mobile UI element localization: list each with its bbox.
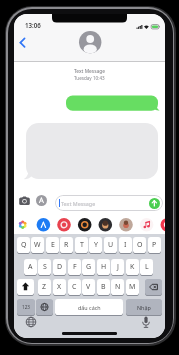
staticText: C (72, 282, 77, 292)
staticText: Y (94, 240, 98, 250)
button[interactable]: 123 (17, 299, 35, 315)
staticText: H (101, 262, 107, 272)
button[interactable]: F (68, 259, 81, 275)
button[interactable]: K (126, 259, 139, 275)
button[interactable] (139, 315, 153, 329)
button[interactable]: T (75, 237, 88, 253)
button[interactable]: Z (38, 279, 51, 295)
button[interactable] (145, 279, 162, 295)
staticText: P (152, 240, 157, 250)
staticText: 13:06 (25, 21, 41, 29)
staticText: D (57, 262, 63, 272)
button[interactable]: W (31, 237, 44, 253)
button[interactable] (79, 31, 101, 53)
button[interactable] (149, 198, 160, 209)
button[interactable] (16, 218, 30, 232)
staticText: B (101, 282, 106, 292)
button[interactable]: Y (89, 237, 102, 253)
button[interactable]: U (104, 237, 117, 253)
staticText: Text Message (74, 68, 105, 75)
button[interactable] (78, 218, 92, 232)
button[interactable] (17, 279, 34, 295)
button[interactable]: dấu cách (55, 299, 123, 315)
button[interactable]: R (60, 237, 73, 253)
staticText: U (108, 240, 114, 250)
staticText: M (129, 282, 136, 292)
button[interactable]: Q (17, 237, 30, 253)
button[interactable] (36, 195, 47, 206)
staticText: 123 (22, 304, 30, 310)
button[interactable]: E (46, 237, 59, 253)
button[interactable]: G (82, 259, 95, 275)
button[interactable]: Nhập (126, 299, 162, 315)
staticText: Z (42, 282, 47, 292)
staticText: R (64, 240, 69, 250)
button[interactable] (24, 315, 38, 329)
staticText: G (86, 262, 92, 272)
button[interactable]: Text Message (55, 195, 163, 211)
button[interactable]: L (140, 259, 153, 275)
button[interactable] (57, 218, 71, 232)
button[interactable]: D (53, 259, 66, 275)
staticText: Nhập (137, 304, 151, 311)
staticText: K (130, 262, 135, 272)
button[interactable]: B (97, 279, 110, 295)
button[interactable]: S (38, 259, 51, 275)
button[interactable] (99, 218, 113, 232)
staticText: E (51, 240, 55, 250)
staticText: S (43, 262, 47, 272)
button[interactable] (161, 218, 165, 232)
button[interactable] (119, 218, 133, 232)
button[interactable] (37, 218, 51, 232)
staticText: Tuesday 10:43 (74, 75, 105, 81)
staticText: A (28, 262, 33, 272)
button[interactable]: J (111, 259, 124, 275)
staticText: J (117, 262, 119, 272)
staticText: L (145, 262, 149, 272)
button[interactable]: I (119, 237, 132, 253)
staticText: Q (21, 240, 27, 250)
staticText: Text Message (61, 200, 96, 207)
button[interactable] (140, 218, 154, 232)
staticText: X (57, 282, 62, 292)
staticText: dấu cách (78, 304, 101, 311)
button[interactable] (18, 36, 28, 50)
staticText: V (86, 282, 91, 292)
staticText: W (34, 240, 41, 250)
staticText: O (137, 240, 143, 250)
button[interactable]: X (53, 279, 66, 295)
button[interactable] (36, 299, 53, 315)
button[interactable]: N (111, 279, 124, 295)
button[interactable]: V (82, 279, 95, 295)
button[interactable]: A (24, 259, 37, 275)
staticText: T (80, 240, 84, 250)
button[interactable]: C (68, 279, 81, 295)
button[interactable] (18, 194, 31, 207)
staticText: N (115, 282, 121, 292)
button[interactable]: H (97, 259, 110, 275)
staticText: I (124, 240, 127, 250)
button[interactable]: P (148, 237, 161, 253)
button[interactable]: M (126, 279, 139, 295)
button[interactable]: O (133, 237, 146, 253)
staticText: F (73, 262, 77, 272)
